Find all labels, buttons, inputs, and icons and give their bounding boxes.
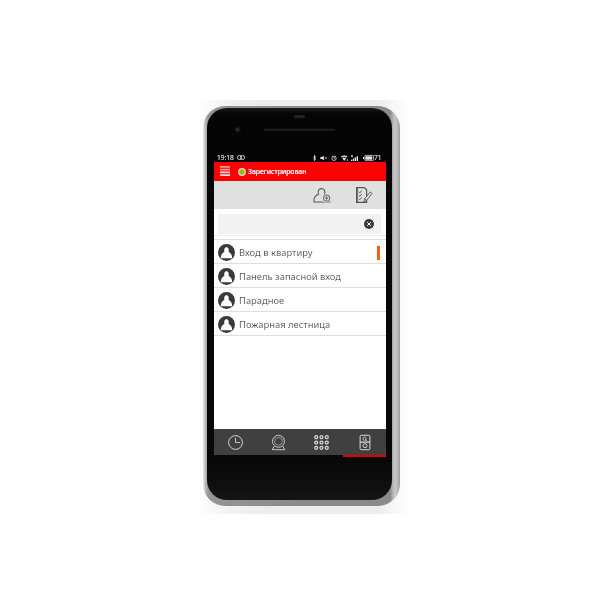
button[interactable]: Intercom — [343, 429, 386, 455]
button[interactable]: Clear — [218, 214, 381, 234]
button[interactable]: History — [214, 429, 257, 455]
button[interactable]: Панель запасной вход — [214, 264, 386, 288]
staticText: 71 — [374, 153, 382, 162]
button[interactable]: Пожарная лестница — [214, 312, 386, 336]
staticText: 19:18 — [217, 153, 234, 162]
button[interactable]: Вход в квартиру — [214, 240, 386, 264]
button[interactable]: Menu — [215, 162, 234, 181]
button[interactable]: Camera — [257, 429, 300, 455]
staticText: Панель запасной вход — [239, 270, 341, 283]
button[interactable]: Add person — [306, 182, 336, 208]
button[interactable]: Парадное — [214, 288, 386, 312]
staticText: Вход в квартиру — [239, 246, 313, 259]
button[interactable]: Clear — [364, 219, 374, 229]
button[interactable]: Keypad — [300, 429, 343, 455]
staticText: Зарегистрирован — [248, 167, 307, 176]
staticText: Пожарная лестница — [239, 318, 331, 331]
button[interactable]: Edit list — [349, 182, 379, 208]
staticText: Парадное — [239, 294, 285, 307]
